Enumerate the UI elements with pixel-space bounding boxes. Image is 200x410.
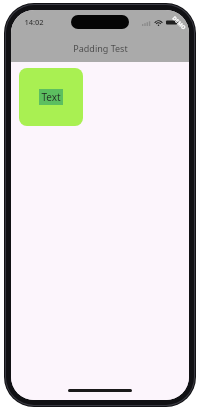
staticText: DEMO — [171, 14, 188, 31]
staticText: 14:02 — [24, 17, 44, 27]
other: Demo badge — [143, 10, 189, 56]
button[interactable]: Text — [19, 68, 83, 126]
staticText: Padding Test — [73, 42, 128, 54]
staticText: Text — [41, 90, 61, 104]
